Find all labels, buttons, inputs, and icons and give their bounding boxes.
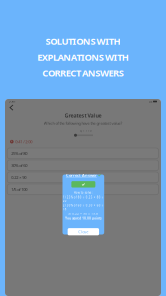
- staticText: 0:41 / 2:00: [15, 139, 32, 144]
- button[interactable]: Close: [68, 228, 99, 235]
- staticText: Which of the following have the greatest…: [43, 120, 122, 126]
- staticText: LTE: [149, 100, 152, 103]
- staticText: 30% of 60: [11, 163, 27, 168]
- staticText: 1) 25% of 80 = 0.25 × 80 = 20: [63, 196, 104, 203]
- staticText: Greatest Value: [64, 112, 101, 119]
- button[interactable]: 0.22 × 90: [7, 172, 158, 183]
- button[interactable]: 30% of 60: [7, 160, 158, 171]
- staticText: 2) 30% of 60 = 0.30 × 60 = 18: [63, 204, 104, 211]
- staticText: 3) 0.22 × 90 = 19.8: [68, 212, 98, 215]
- staticText: 0.22 × 90: [11, 175, 26, 180]
- staticText: How to solve:: [74, 191, 93, 194]
- staticText: You scored 10.00 points: [65, 217, 101, 220]
- staticText: Close: [78, 229, 88, 234]
- staticText: Correct Answer: [66, 172, 97, 178]
- staticText: CORRECT ANSWERS: [42, 67, 124, 79]
- button[interactable]: 25% of 80: [7, 148, 158, 159]
- staticText: EXPLANATIONS WITH: [37, 51, 129, 63]
- staticText: Q 1 / 10: [80, 129, 92, 132]
- button[interactable]: 1/5 of 100: [7, 184, 158, 195]
- staticText: 1/5 of 100: [11, 187, 27, 192]
- staticText: 9:41: [9, 100, 16, 103]
- staticText: SOLUTIONS WITH: [46, 35, 120, 47]
- staticText: 25% of 80: [11, 151, 27, 156]
